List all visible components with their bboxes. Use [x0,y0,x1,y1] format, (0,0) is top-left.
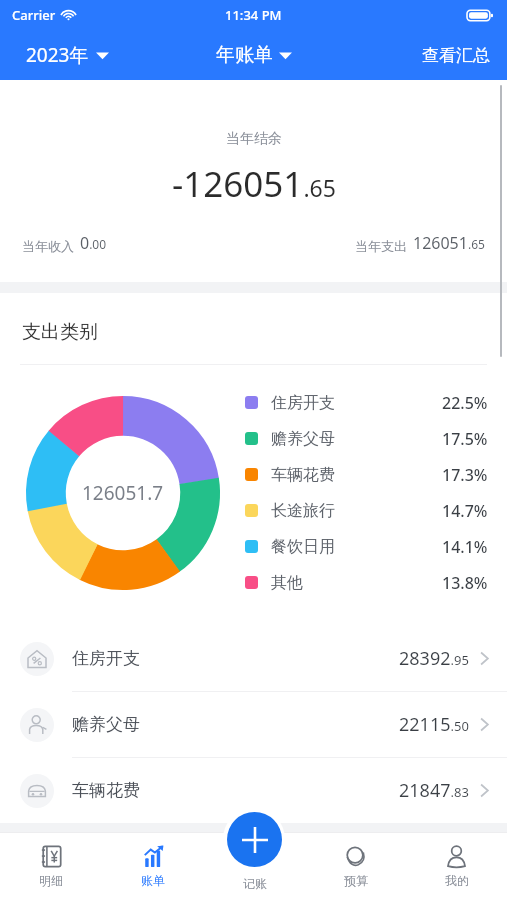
button[interactable]: 明细 [0,832,102,900]
staticText: 账单 [141,873,165,888]
staticText: 车辆花费 [72,780,140,801]
staticText: 餐饮日用 [271,537,335,557]
staticText: 赡养父母 [72,714,140,735]
button[interactable]: 赡养父母 [0,692,507,757]
button[interactable]: 记账 Add record [227,812,282,867]
button[interactable]: 住房开支 [0,626,507,691]
staticText: 支出类别 [22,320,98,344]
staticText: 当年支出 [355,238,407,254]
staticText: 住房开支 [271,393,335,413]
button[interactable]: 年账单 [206,37,302,73]
button[interactable]: 2023年 [0,36,125,74]
staticText: 2023年 [26,42,89,68]
staticText: 当年收入 [22,238,74,254]
button[interactable]: 账单 [102,832,204,900]
staticText: 明细 [39,873,63,888]
staticText: 28392.95 [399,646,469,671]
button[interactable]: 我的 [406,832,507,900]
staticText: 22115.50 [399,712,469,737]
staticText: 年账单 [216,43,273,67]
staticText: -126051.65 [172,160,336,208]
staticText: 当年结余 [226,130,282,148]
button[interactable]: 预算 [305,832,406,900]
staticText: 车辆花费 [271,465,335,485]
staticText: 14.1% [442,536,488,558]
staticText: 长途旅行 [271,501,335,521]
staticText: 记账 [243,876,267,891]
staticText: 22.5% [442,392,488,414]
button[interactable]: 车辆花费 [0,758,507,823]
staticText: 赡养父母 [271,429,335,449]
staticText: 预算 [344,873,368,888]
staticText: 17.5% [442,428,488,450]
staticText: 11:34 PM [225,6,282,24]
staticText: 0.00 [80,232,107,254]
staticText: 21847.83 [399,778,469,803]
staticText: 17.3% [442,464,488,486]
button[interactable]: 查看汇总 [406,39,507,72]
staticText: Carrier [12,6,56,24]
staticText: 13.8% [442,572,488,594]
staticText: 我的 [445,873,469,888]
staticText: 查看汇总 [422,45,490,66]
staticText: 其他 [271,573,303,593]
staticText: 126051.65 [413,232,485,254]
staticText: 14.7% [442,500,488,522]
staticText: 住房开支 [72,648,140,669]
staticText: 126051.7 [82,480,164,506]
